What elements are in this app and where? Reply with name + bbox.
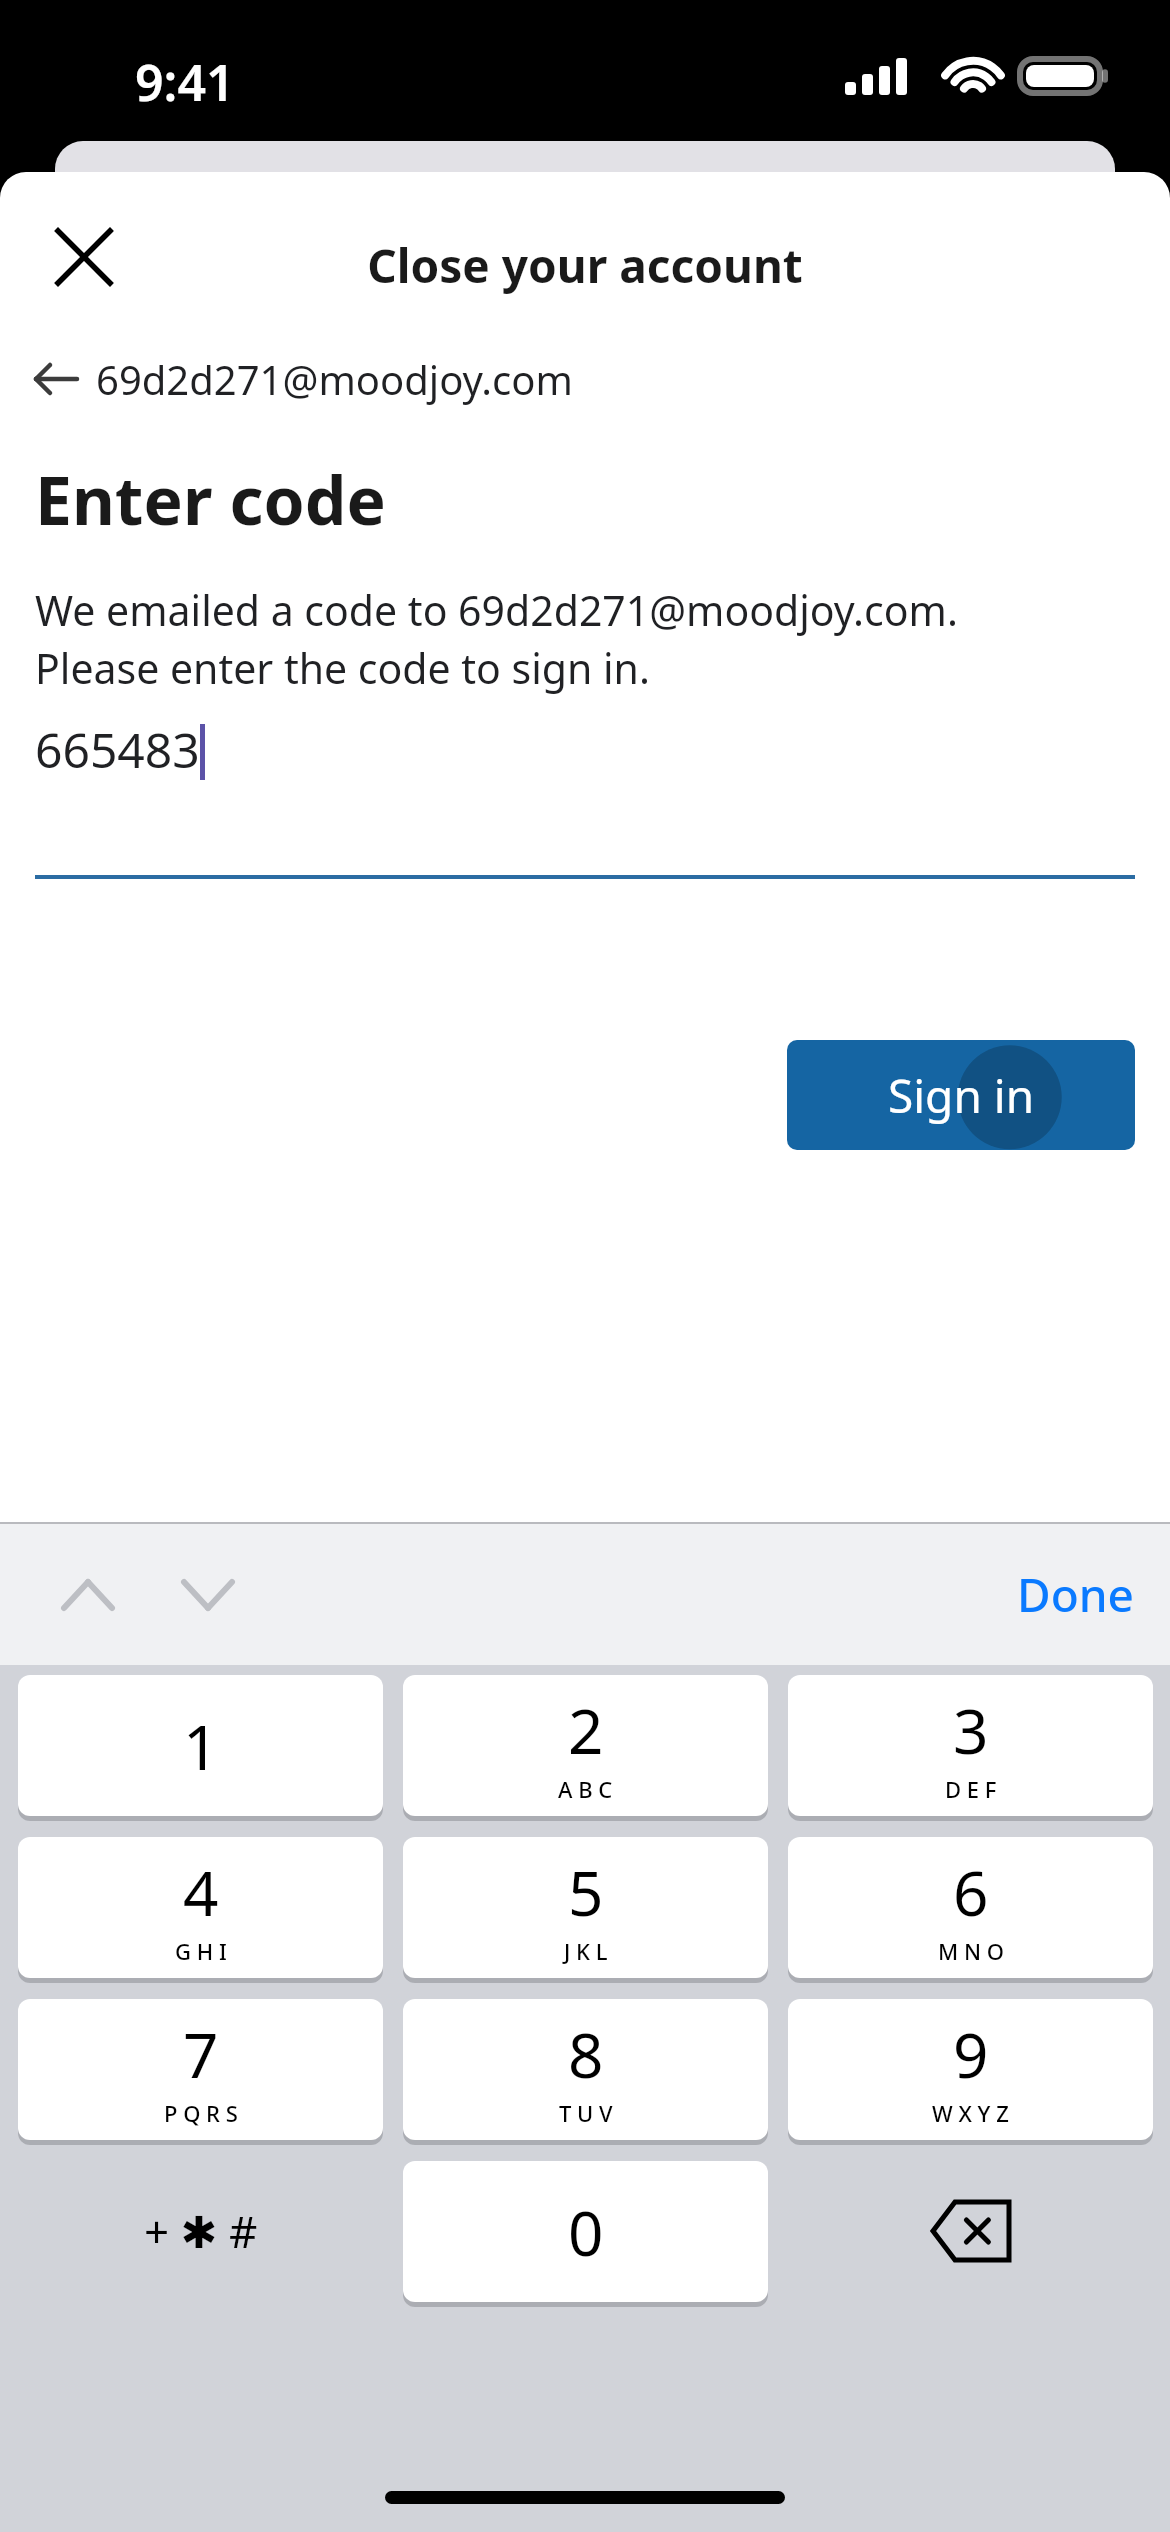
button[interactable]: 3 xyxy=(788,1675,1153,1816)
staticText: Enter code xyxy=(35,454,386,544)
button[interactable]: Done xyxy=(1001,1549,1150,1640)
staticText: 9:41 xyxy=(135,48,235,116)
staticText: Done xyxy=(1017,1563,1134,1626)
button[interactable]: Close xyxy=(22,195,146,319)
staticText: Close your account xyxy=(0,234,1170,297)
staticText: A B C xyxy=(558,1774,613,1804)
staticText: 2 xyxy=(568,1688,604,1772)
staticText: T U V xyxy=(559,2098,613,2128)
button[interactable]: 5 xyxy=(403,1837,768,1978)
staticText: G H I xyxy=(175,1936,227,1966)
button[interactable]: 69d2d271@moodjoy.com xyxy=(22,342,585,416)
button[interactable]: Sign in xyxy=(787,1040,1135,1150)
staticText: 5 xyxy=(568,1850,604,1934)
staticText: J K L xyxy=(564,1936,608,1966)
button[interactable]: 8 xyxy=(403,1999,768,2140)
button[interactable]: 2 xyxy=(403,1675,768,1816)
staticText: D E F xyxy=(945,1774,997,1804)
staticText: 0 xyxy=(568,2190,604,2274)
button[interactable]: 4 xyxy=(18,1837,383,1978)
button[interactable]: 6 xyxy=(788,1837,1153,1978)
staticText: + ✱ # xyxy=(144,2201,258,2261)
button[interactable]: 665483 xyxy=(35,717,1135,907)
button[interactable]: Next field xyxy=(160,1547,256,1643)
staticText: 665483 xyxy=(35,717,200,782)
staticText: M N O xyxy=(938,1936,1004,1966)
button[interactable]: 9 xyxy=(788,1999,1153,2140)
staticText: 9 xyxy=(953,2012,989,2096)
button[interactable]: 0 xyxy=(403,2161,768,2302)
staticText: 7 xyxy=(183,2012,219,2096)
button[interactable]: 1 xyxy=(18,1675,383,1816)
staticText: 6 xyxy=(953,1850,989,1934)
button[interactable]: 7 xyxy=(18,1999,383,2140)
staticText: W X Y Z xyxy=(932,2098,1009,2128)
staticText: 4 xyxy=(183,1850,219,1934)
staticText: We emailed a code to 69d2d271@moodjoy.co… xyxy=(35,582,958,696)
button[interactable]: Backspace xyxy=(788,2161,1153,2301)
staticText: 3 xyxy=(953,1688,989,1772)
staticText: 1 xyxy=(183,1704,219,1788)
button[interactable]: + ✱ # xyxy=(18,2161,383,2301)
staticText: Sign in xyxy=(888,1064,1035,1127)
staticText: 8 xyxy=(568,2012,604,2096)
button[interactable]: Previous field xyxy=(40,1547,136,1643)
staticText: 69d2d271@moodjoy.com xyxy=(96,352,573,406)
staticText: P Q R S xyxy=(164,2098,238,2128)
